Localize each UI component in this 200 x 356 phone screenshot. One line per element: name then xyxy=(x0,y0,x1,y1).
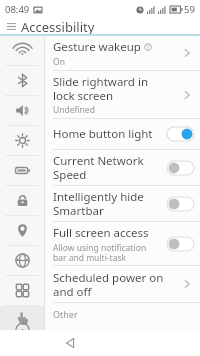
staticText: Other xyxy=(53,308,78,320)
button[interactable]: Slide rightward in lock screen xyxy=(45,71,200,118)
button[interactable]: Intelligently hide Smartbar xyxy=(45,186,200,221)
button[interactable]: Security xyxy=(0,186,44,215)
button[interactable]: Accessibility xyxy=(0,306,44,330)
staticText: 59 xyxy=(184,3,195,16)
button[interactable]: Toggle off xyxy=(167,237,194,251)
staticText: Slide rightward in lock screen xyxy=(53,74,148,103)
button[interactable]: Current Network Speed xyxy=(45,150,200,185)
staticText: Accessibility xyxy=(21,18,95,34)
staticText: On xyxy=(53,56,65,68)
button[interactable]: Battery xyxy=(0,156,44,185)
staticText: Home button light xyxy=(53,126,153,142)
button[interactable]: Full screen access xyxy=(45,222,200,265)
button[interactable]: Bluetooth xyxy=(0,66,44,95)
button[interactable]: Toggle on xyxy=(167,127,194,141)
button[interactable]: Other xyxy=(45,303,200,325)
staticText: Scheduled power on and off xyxy=(53,270,164,299)
staticText: Gesture wakeup xyxy=(53,39,141,55)
button[interactable]: Back xyxy=(60,333,80,353)
button[interactable]: Location xyxy=(0,216,44,245)
button[interactable]: Language xyxy=(0,246,44,275)
staticText: 08:49 xyxy=(5,3,30,16)
staticText: Undefined xyxy=(53,104,95,116)
staticText: Allow using notification bar and multi-t… xyxy=(53,242,147,263)
button[interactable]: Toggle off xyxy=(167,161,194,175)
button[interactable]: Gesture wakeup xyxy=(45,36,200,70)
button[interactable]: Menu xyxy=(4,19,18,33)
button[interactable]: Scheduled power on and off xyxy=(45,266,200,302)
button[interactable]: Apps xyxy=(0,276,44,305)
button[interactable]: Toggle off xyxy=(167,197,194,211)
button[interactable]: Wi-Fi xyxy=(0,36,44,65)
staticText: Full screen access xyxy=(53,225,149,241)
button[interactable]: Display xyxy=(0,126,44,155)
button[interactable]: Home button light xyxy=(45,119,200,149)
button[interactable]: Sound xyxy=(0,96,44,125)
staticText: Intelligently hide Smartbar xyxy=(53,189,144,218)
staticText: Current Network Speed xyxy=(53,153,144,182)
